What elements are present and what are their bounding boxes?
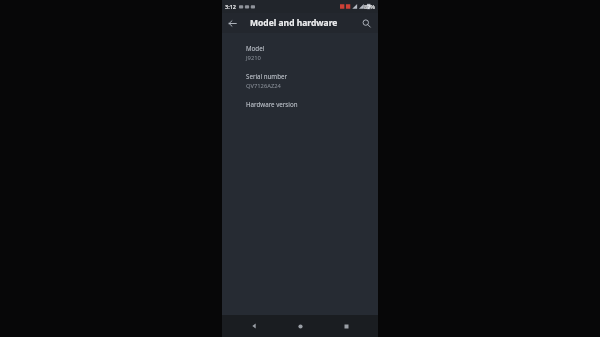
button[interactable]: Back xyxy=(240,315,268,337)
button[interactable]: Back xyxy=(222,13,242,33)
staticText: Model and hardware xyxy=(250,17,338,29)
button[interactable]: Serial number xyxy=(222,67,378,95)
staticText: Serial number xyxy=(246,72,287,80)
staticText: 87% xyxy=(364,3,375,10)
staticText: 3:12 xyxy=(225,3,236,10)
button[interactable]: Recent apps xyxy=(332,315,360,337)
staticText: QV7126AZ24 xyxy=(246,82,281,90)
button[interactable]: Home xyxy=(286,315,314,337)
button[interactable]: Hardware version xyxy=(222,95,378,113)
staticText: J9210 xyxy=(246,54,261,62)
button[interactable]: Search xyxy=(356,13,376,33)
staticText: Hardware version xyxy=(246,100,298,108)
button[interactable]: Model xyxy=(222,39,378,67)
staticText: Model xyxy=(246,44,265,52)
